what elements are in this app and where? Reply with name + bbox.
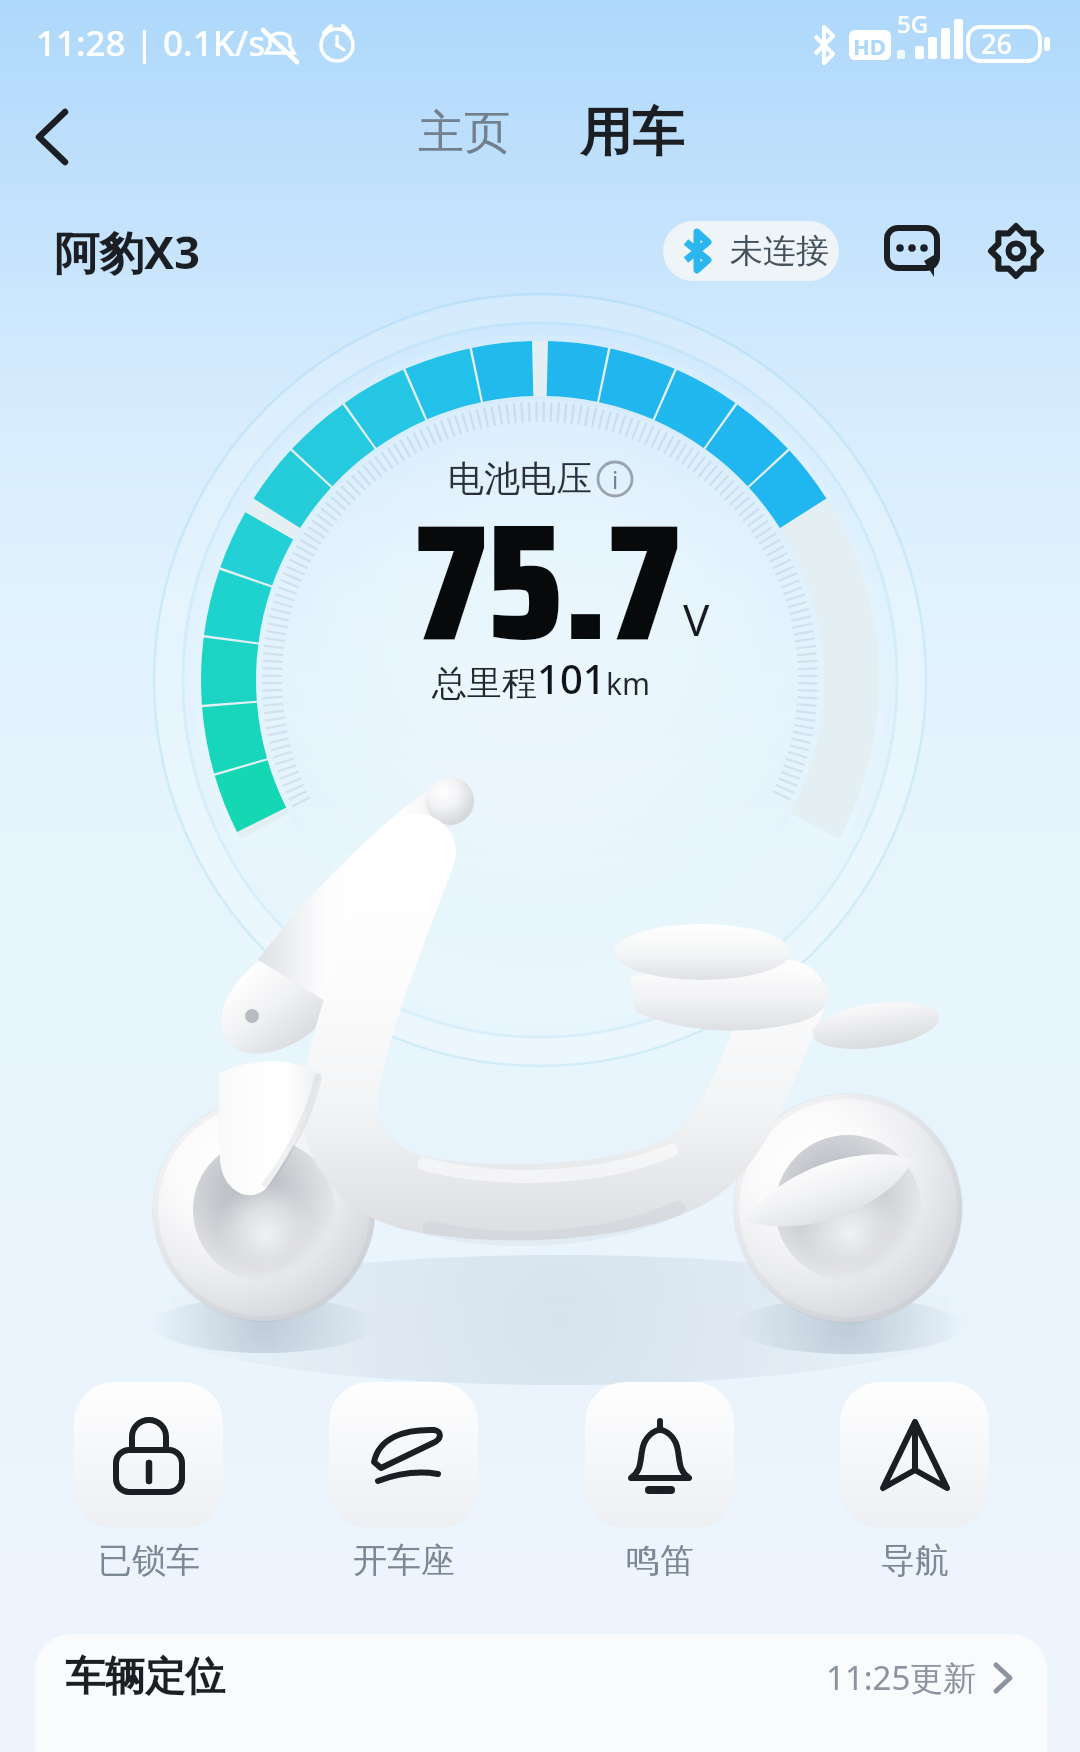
- button[interactable]: 已锁车: [74, 1382, 223, 1582]
- staticText: 11:25更新: [826, 1655, 977, 1700]
- button[interactable]: 开车座: [329, 1382, 478, 1582]
- button[interactable]: 鸣笛: [585, 1382, 734, 1582]
- staticText: V: [683, 589, 710, 649]
- staticText: 已锁车: [98, 1539, 200, 1582]
- staticText: 用车: [580, 100, 684, 166]
- staticText: 主页: [418, 104, 510, 162]
- staticText: 导航: [881, 1539, 949, 1582]
- button[interactable]: Messages: [882, 220, 944, 282]
- staticText: 未连接: [730, 230, 829, 272]
- staticText: 26: [981, 25, 1012, 62]
- staticText: 电池电压: [448, 456, 592, 501]
- staticText: 开车座: [353, 1539, 455, 1582]
- staticText: km: [606, 663, 651, 704]
- button[interactable]: Back: [14, 99, 90, 175]
- staticText: 总里程: [432, 661, 537, 705]
- staticText: HD: [853, 31, 886, 61]
- staticText: 鸣笛: [626, 1539, 694, 1582]
- button[interactable]: 未连接: [663, 221, 839, 281]
- staticText: 5G: [897, 7, 929, 40]
- staticText: 11:28 | 0.1K/s: [36, 19, 266, 67]
- staticText: 75.7: [415, 453, 680, 711]
- staticText: i: [612, 463, 619, 496]
- button[interactable]: 车辆定位: [35, 1634, 1047, 1752]
- button[interactable]: 用车: [580, 100, 684, 166]
- button[interactable]: 导航: [840, 1382, 989, 1582]
- staticText: 101: [537, 651, 606, 705]
- button[interactable]: 主页: [418, 104, 510, 162]
- button[interactable]: Settings: [985, 220, 1047, 282]
- staticText: 阿豹X3: [54, 221, 200, 282]
- staticText: 车辆定位: [65, 1651, 225, 1701]
- button[interactable]: Info: [597, 461, 633, 497]
